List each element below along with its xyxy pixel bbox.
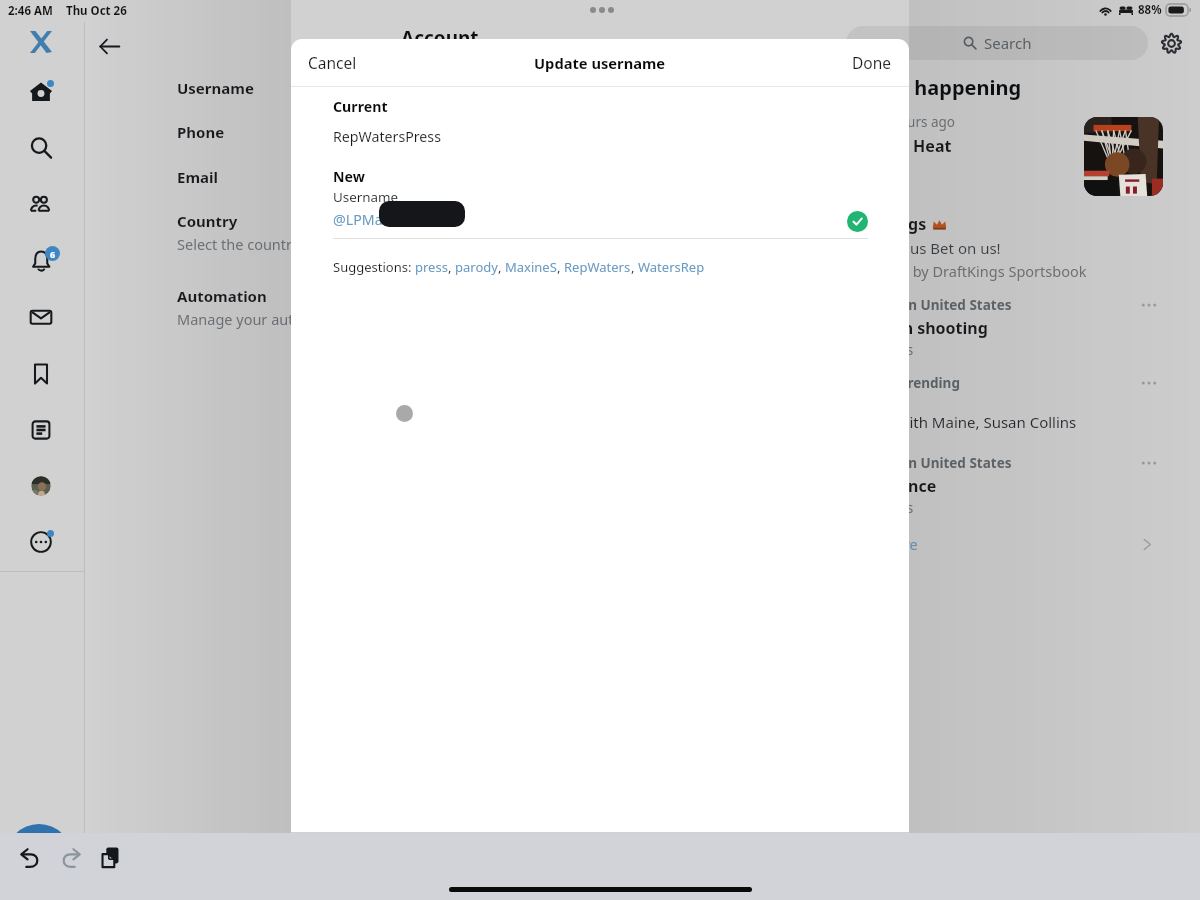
staticText: Country	[177, 211, 238, 231]
button[interactable]: Profile	[19, 464, 63, 508]
staticText: Governance	[841, 475, 937, 497]
button[interactable]: More options	[1138, 372, 1160, 394]
staticText: parody	[455, 258, 498, 276]
staticText: 6	[50, 248, 56, 260]
button[interactable]: RepWaters	[564, 258, 631, 276]
staticText: ,	[498, 258, 505, 276]
staticText: Cancel	[308, 52, 357, 73]
button[interactable]: Search	[846, 26, 1148, 60]
button[interactable]: DraftKings	[841, 213, 1162, 281]
staticText: What's happening	[841, 74, 1022, 101]
button[interactable]: Communities	[19, 183, 63, 227]
staticText: RepWaters	[564, 258, 631, 276]
staticText: Ranked with Maine, Susan Collins	[841, 412, 1077, 432]
staticText: MaxineS	[505, 258, 557, 276]
staticText: Username	[333, 188, 399, 206]
staticText: Automation	[177, 286, 267, 306]
button[interactable]: press	[415, 258, 448, 276]
button[interactable]: More options	[1138, 452, 1160, 474]
staticText: Manage your automated account	[177, 309, 405, 329]
button[interactable]: Compose post	[6, 824, 72, 890]
staticText: @LPMaxineWaters	[333, 210, 458, 229]
button[interactable]: Settings	[1159, 31, 1184, 56]
staticText: Show more	[841, 534, 918, 554]
button[interactable]: More	[19, 520, 63, 564]
staticText: ,	[557, 258, 564, 276]
staticText: Done	[852, 52, 892, 73]
button[interactable]: Messages	[19, 295, 63, 339]
staticText: 9,999 posts	[841, 341, 914, 359]
staticText: Politics · Trending	[841, 374, 960, 392]
button[interactable]: Lists	[19, 408, 63, 452]
button[interactable]: Done	[846, 44, 898, 81]
button[interactable]: More options	[1138, 294, 1160, 316]
staticText: Update username	[534, 53, 666, 73]
button[interactable]: Cancel	[302, 44, 363, 81]
button[interactable]: Search	[19, 126, 63, 170]
button[interactable]: NBA · 2 hours ago	[841, 113, 1162, 195]
staticText: 9,999 posts	[841, 499, 914, 517]
staticText: Account	[401, 25, 479, 51]
staticText: NBA · 2 hours ago	[841, 113, 955, 131]
button[interactable]: Show more	[841, 531, 1154, 557]
staticText: New	[333, 167, 365, 186]
staticText: RepWatersPress	[333, 127, 441, 146]
button[interactable]: Politics · Trending	[841, 374, 1154, 396]
button[interactable]: Home	[19, 70, 63, 114]
staticText: Place Bonus Bet on us!	[841, 238, 1001, 258]
staticText: Select the country you live in.	[177, 234, 376, 254]
button[interactable]: Bookmarks	[19, 352, 63, 396]
button[interactable]: WatersRep	[638, 258, 705, 276]
button[interactable]: Trending in United States	[841, 454, 1154, 517]
button[interactable]: Paste	[91, 838, 129, 876]
staticText: Email	[177, 167, 218, 187]
button[interactable]: Undo	[11, 839, 49, 877]
staticText: Trending in United States	[841, 296, 1012, 314]
button[interactable]: Back	[91, 28, 127, 64]
staticText: Search	[984, 33, 1032, 53]
staticText: ,	[448, 258, 455, 276]
staticText: Current	[333, 97, 388, 116]
staticText: Username	[177, 78, 254, 98]
staticText: 2:46 AM	[8, 3, 53, 19]
button[interactable]: MaxineS	[505, 258, 557, 276]
staticText: DraftKings	[841, 213, 927, 235]
button[interactable]: Phone	[177, 122, 737, 142]
staticText: press	[415, 258, 448, 276]
staticText: 88%	[1138, 2, 1162, 18]
button[interactable]: Email	[177, 167, 737, 187]
staticText: WatersRep	[638, 258, 705, 276]
staticText: Promoted by DraftKings Sportsbook	[841, 261, 1087, 281]
staticText: Suggestions:	[333, 258, 415, 276]
button[interactable]: Username	[177, 78, 737, 98]
staticText: ,	[631, 258, 638, 276]
button[interactable]: Notifications	[19, 239, 63, 283]
staticText: Trending in United States	[841, 454, 1012, 472]
button[interactable]: Trending in United States	[841, 296, 1154, 359]
staticText: Bucks at Heat	[841, 135, 952, 157]
button[interactable]: Country	[177, 211, 737, 254]
button[interactable]: X	[27, 28, 55, 56]
button[interactable]: @LPMaxineWaters	[333, 208, 868, 234]
staticText: Lewiston shooting	[841, 317, 988, 339]
button[interactable]: Redo	[51, 839, 89, 877]
staticText: Phone	[177, 122, 225, 142]
button[interactable]: parody	[455, 258, 498, 276]
button[interactable]: Automation	[177, 286, 737, 329]
staticText: Thu Oct 26	[66, 3, 127, 19]
